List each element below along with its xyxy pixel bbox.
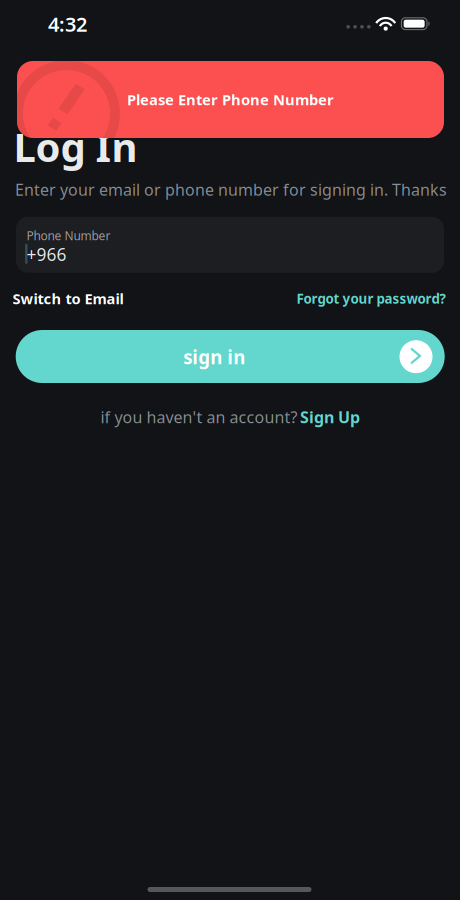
button[interactable]: sign in [16,330,445,383]
button[interactable]: Switch to Email [12,289,123,308]
staticText: Please Enter Phone Number [127,90,334,109]
staticText: +966 [26,243,66,266]
button[interactable]: Forgot your password? [296,290,445,307]
staticText: 4:32 [48,11,87,37]
staticText: sign in [183,345,245,369]
staticText: Enter your email or phone number for sig… [15,179,447,200]
staticText: Sign Up [300,406,360,428]
staticText: Log In [13,120,137,173]
staticText: if you haven't an account? [100,406,297,428]
button[interactable]: Sign Up [300,406,360,428]
staticText: Forgot your password? [296,290,445,307]
staticText: Phone Number [26,228,110,243]
staticText: Switch to Email [12,289,123,308]
